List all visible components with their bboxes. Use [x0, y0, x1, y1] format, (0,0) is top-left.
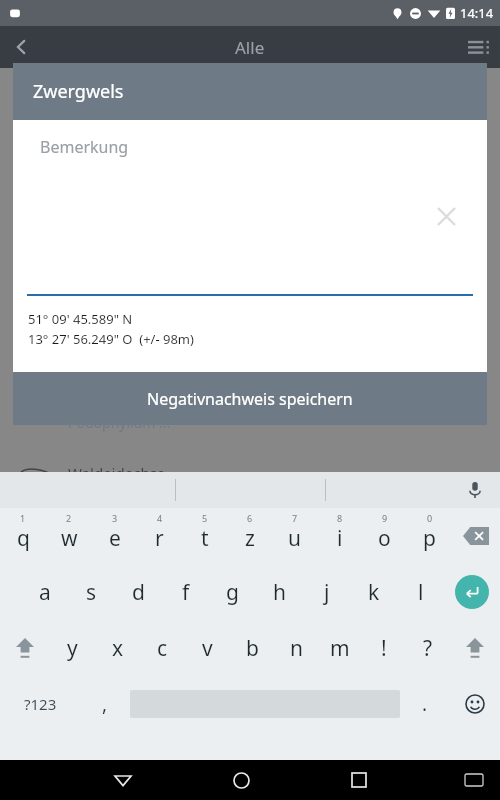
button[interactable]: ?123: [0, 676, 80, 732]
button[interactable]: Keyboard: [454, 760, 494, 800]
staticText: t: [201, 524, 209, 553]
button[interactable]: 5: [182, 508, 227, 564]
staticText: k: [368, 578, 380, 607]
staticText: s: [86, 578, 97, 607]
button[interactable]: Recents: [336, 760, 382, 800]
button[interactable]: y: [50, 620, 95, 676]
button[interactable]: x: [95, 620, 140, 676]
button[interactable]: Emoji: [450, 676, 500, 732]
staticText: q: [17, 524, 30, 553]
button[interactable]: 4: [137, 508, 182, 564]
button[interactable]: Menu: [458, 26, 500, 68]
button[interactable]: l: [397, 564, 444, 620]
button[interactable]: j: [303, 564, 350, 620]
button[interactable]: d: [115, 564, 162, 620]
staticText: w: [61, 524, 78, 553]
staticText: 0: [427, 512, 433, 524]
button[interactable]: v: [185, 620, 230, 676]
button[interactable]: Shift: [450, 620, 500, 676]
button[interactable]: 9: [362, 508, 407, 564]
button[interactable]: Voice input: [460, 475, 490, 505]
staticText: c: [157, 634, 168, 663]
staticText: 13° 27' 56.249" O (+/- 98m): [28, 330, 194, 348]
staticText: d: [132, 578, 145, 607]
staticText: m: [330, 634, 350, 663]
button[interactable]: m: [318, 620, 362, 676]
staticText: v: [202, 634, 213, 663]
staticText: x: [112, 634, 124, 663]
staticText: 6: [247, 512, 253, 524]
staticText: 5: [202, 512, 208, 524]
staticText: h: [273, 578, 286, 607]
staticText: 1: [20, 512, 26, 524]
staticText: i: [337, 524, 343, 553]
staticText: Waldeidechse: [68, 463, 166, 483]
button[interactable]: ?: [406, 620, 450, 676]
staticText: ?: [423, 634, 433, 663]
staticText: u: [288, 524, 301, 553]
button[interactable]: Enter: [444, 564, 500, 620]
button[interactable]: ,: [80, 676, 130, 732]
staticText: 3: [112, 512, 118, 524]
staticText: 4: [157, 512, 163, 524]
button[interactable]: 1: [0, 508, 46, 564]
staticText: Negativnachweis speichern: [147, 388, 353, 410]
staticText: 14:14: [460, 4, 494, 22]
staticText: n: [290, 634, 303, 663]
staticText: j: [324, 578, 330, 607]
button[interactable]: 3: [92, 508, 137, 564]
staticText: o: [378, 524, 391, 553]
staticText: 2: [66, 512, 72, 524]
staticText: a: [39, 578, 51, 607]
staticText: f: [182, 578, 190, 607]
button[interactable]: b: [230, 620, 274, 676]
button[interactable]: Back: [100, 760, 146, 800]
button[interactable]: n: [274, 620, 318, 676]
button[interactable]: 6: [227, 508, 272, 564]
staticText: g: [226, 578, 239, 607]
button[interactable]: 7: [272, 508, 317, 564]
button[interactable]: .: [400, 676, 450, 732]
button[interactable]: Delete: [452, 508, 500, 564]
staticText: ,: [102, 691, 108, 717]
button[interactable]: k: [350, 564, 397, 620]
button[interactable]: s: [68, 564, 115, 620]
button[interactable]: !: [362, 620, 406, 676]
staticText: r: [155, 524, 164, 553]
button[interactable]: 0: [407, 508, 452, 564]
staticText: 8: [337, 512, 343, 524]
button[interactable]: 8: [317, 508, 362, 564]
staticText: !: [381, 634, 387, 663]
staticText: l: [418, 578, 424, 607]
button[interactable]: f: [162, 564, 209, 620]
staticText: ?123: [24, 694, 57, 714]
staticText: Alle: [235, 36, 265, 59]
staticText: y: [67, 634, 78, 663]
button[interactable]: Shift: [0, 620, 50, 676]
button[interactable]: Clear: [431, 201, 461, 231]
staticText: 51° 09' 45.589" N: [28, 310, 133, 328]
staticText: 7: [292, 512, 298, 524]
staticText: p: [423, 524, 436, 553]
button[interactable]: Home: [218, 760, 264, 800]
staticText: .: [422, 691, 428, 717]
staticText: Podophyllum ...: [68, 413, 171, 432]
button[interactable]: 2: [46, 508, 92, 564]
button[interactable]: a: [22, 564, 68, 620]
button[interactable]: h: [256, 564, 303, 620]
button[interactable]: Negativnachweis speichern: [13, 372, 487, 425]
staticText: Zwergwels: [33, 79, 124, 104]
staticText: Bemerkung: [40, 136, 129, 158]
staticText: b: [246, 634, 259, 663]
staticText: z: [245, 524, 255, 553]
staticText: 9: [382, 512, 388, 524]
button[interactable]: Back: [0, 26, 42, 68]
button[interactable]: c: [140, 620, 185, 676]
staticText: e: [109, 524, 121, 553]
button[interactable]: g: [209, 564, 256, 620]
